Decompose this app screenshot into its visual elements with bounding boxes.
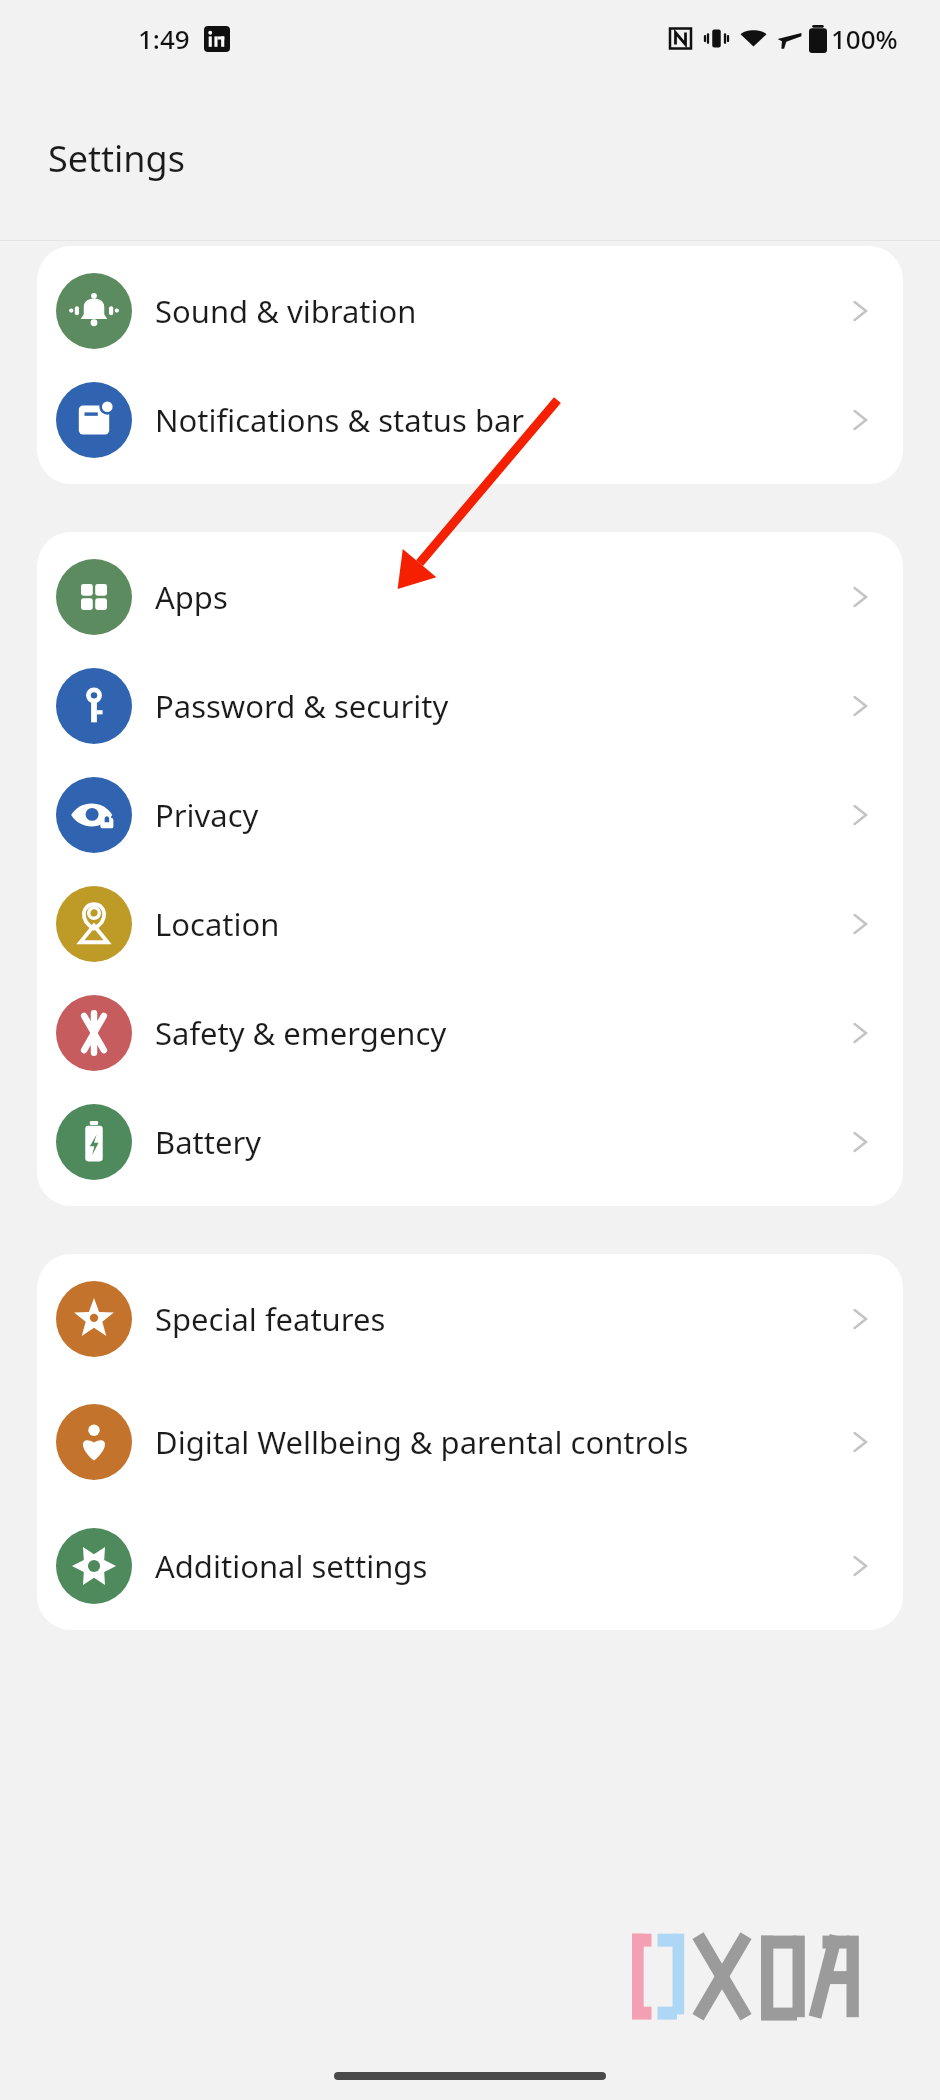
staticText: Additional settings — [155, 1545, 835, 1587]
staticText: Location — [155, 903, 835, 945]
staticText: Digital Wellbeing & parental controls — [155, 1421, 835, 1463]
staticText: Apps — [155, 576, 835, 618]
staticText: Password & security — [155, 685, 835, 727]
staticText: Privacy — [155, 794, 835, 836]
button[interactable]: Sound & vibration — [37, 256, 903, 365]
staticText: 1:49 — [138, 21, 190, 56]
staticText: Battery — [155, 1121, 835, 1163]
button[interactable]: Password & security — [37, 651, 903, 760]
button[interactable]: Apps — [37, 542, 903, 651]
staticText: Safety & emergency — [155, 1012, 835, 1054]
button[interactable]: Privacy — [37, 760, 903, 869]
button[interactable]: Safety & emergency — [37, 978, 903, 1087]
staticText: Sound & vibration — [155, 290, 835, 332]
button[interactable]: Special features — [37, 1264, 903, 1373]
button[interactable]: Notifications & status bar — [37, 365, 903, 474]
staticText: Notifications & status bar — [155, 399, 835, 441]
button[interactable]: Battery — [37, 1087, 903, 1196]
staticText: 100% — [831, 21, 898, 56]
button[interactable]: Digital Wellbeing & parental controls — [37, 1373, 903, 1511]
button[interactable]: Location — [37, 869, 903, 978]
staticText: Settings — [48, 134, 185, 183]
staticText: Special features — [155, 1298, 835, 1340]
button[interactable]: Additional settings — [37, 1511, 903, 1620]
